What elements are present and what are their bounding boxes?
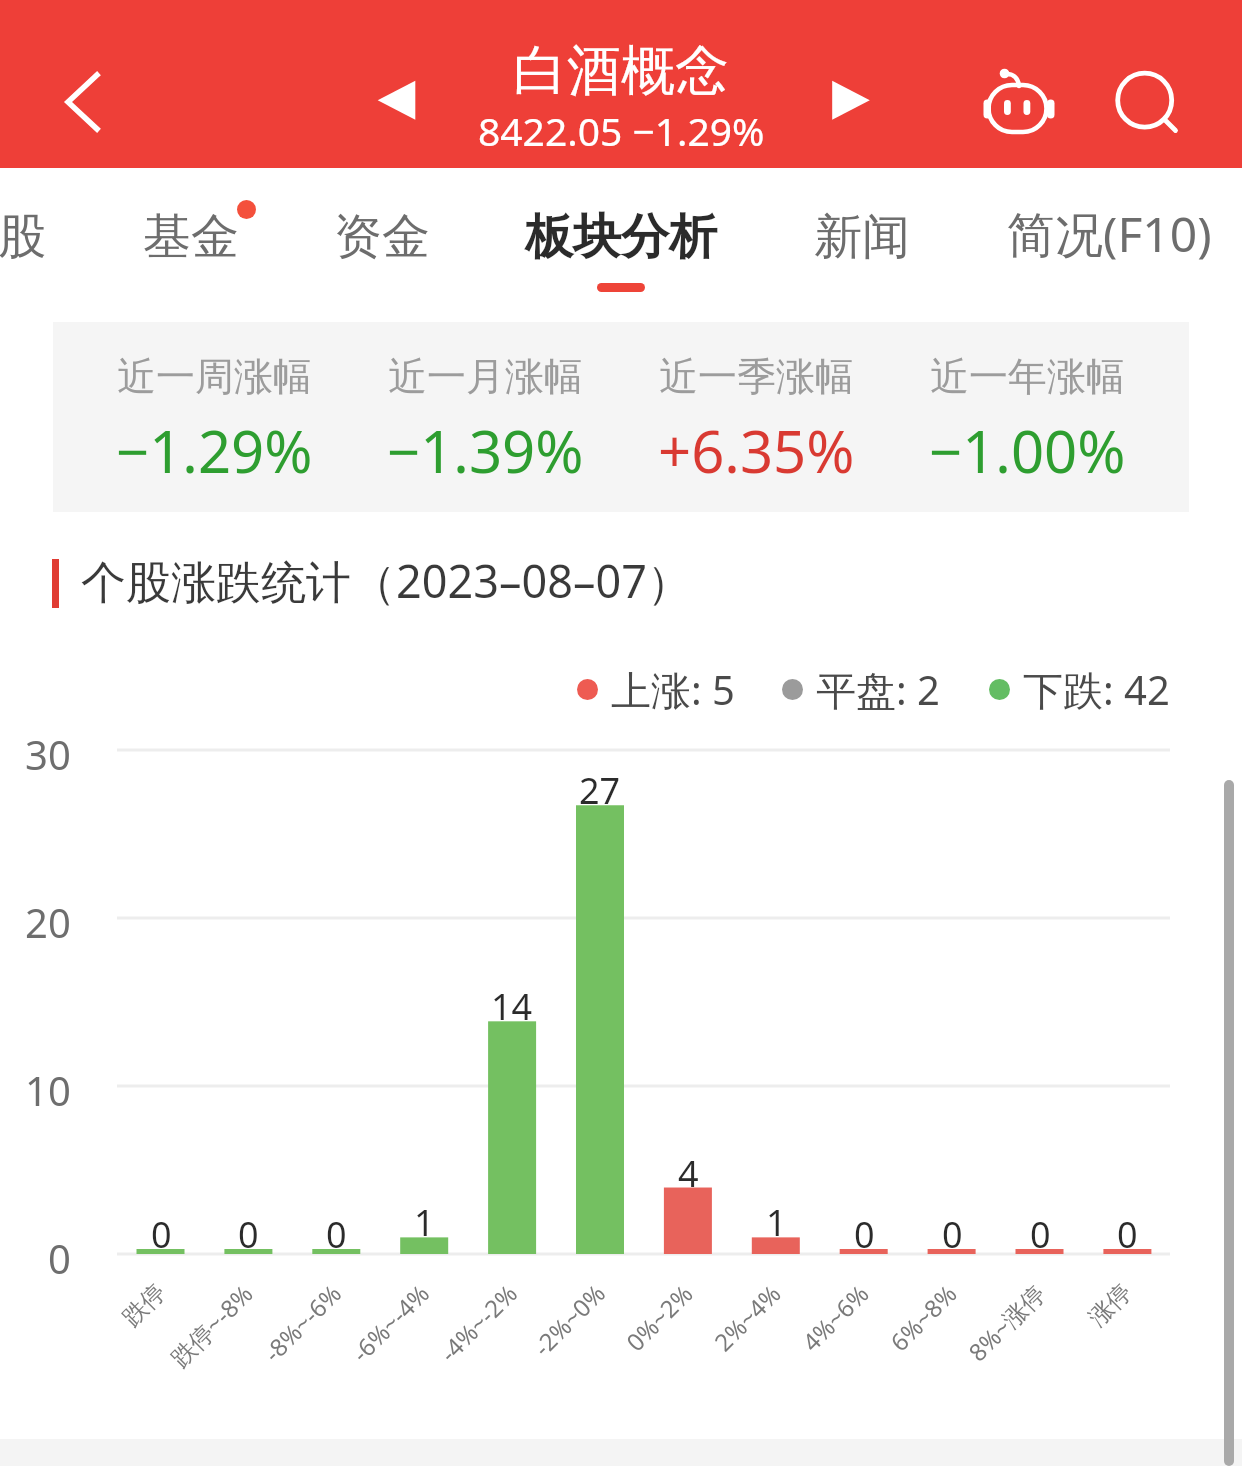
staticText: 0 xyxy=(942,1210,963,1259)
button[interactable]: 股 xyxy=(0,168,46,298)
staticText: 跌停~-8% xyxy=(163,1277,260,1374)
staticText: 白酒概念 xyxy=(513,37,729,105)
button[interactable]: 新闻 xyxy=(814,168,910,298)
staticText: 上涨: 5 xyxy=(611,662,735,717)
staticText: 0 xyxy=(854,1210,875,1259)
staticText: 6%~8% xyxy=(883,1277,964,1358)
staticText: 下跌: 42 xyxy=(1023,662,1170,717)
button[interactable]: Back xyxy=(28,42,138,152)
staticText: 近一年涨幅 xyxy=(930,352,1125,401)
staticText: 跌停 xyxy=(116,1277,172,1333)
staticText: −1.29% xyxy=(116,411,313,490)
button[interactable]: 板块分析 xyxy=(525,168,717,298)
staticText: 基金 xyxy=(143,207,239,267)
staticText: 8%~涨停 xyxy=(961,1277,1052,1368)
button[interactable]: Next sector xyxy=(797,50,897,150)
staticText: 10 xyxy=(25,1063,71,1117)
staticText: 近一季涨幅 xyxy=(659,352,854,401)
button[interactable]: 资金 xyxy=(334,168,430,298)
staticText: 资金 xyxy=(334,207,430,267)
staticText: 0 xyxy=(1117,1210,1138,1259)
button[interactable]: Search xyxy=(1088,43,1208,163)
button[interactable]: 平盘: 2 xyxy=(782,662,940,717)
staticText: -6%~-4% xyxy=(344,1277,436,1369)
staticText: 1 xyxy=(414,1198,435,1247)
staticText: 0 xyxy=(326,1210,347,1259)
button[interactable]: 近一周涨幅 xyxy=(79,322,350,512)
staticText: 0%~2% xyxy=(619,1277,700,1358)
staticText: 4%~6% xyxy=(795,1277,876,1358)
staticText: 股 xyxy=(0,207,46,267)
button[interactable]: AI assistant xyxy=(957,43,1077,163)
staticText: 1 xyxy=(766,1198,787,1247)
button[interactable]: 近一年涨幅 xyxy=(892,322,1163,512)
staticText: 个股涨跌统计（2023–08–07） xyxy=(81,550,692,611)
button[interactable]: Previous sector xyxy=(346,50,446,150)
staticText: 0 xyxy=(1030,1210,1051,1259)
staticText: 简况(F10) xyxy=(1007,201,1212,267)
staticText: 8422.05 −1.29% xyxy=(478,104,765,157)
staticText: 近一周涨幅 xyxy=(117,352,312,401)
staticText: 0 xyxy=(151,1210,172,1259)
staticText: −1.00% xyxy=(929,411,1126,490)
button[interactable]: 近一月涨幅 xyxy=(350,322,621,512)
staticText: 平盘: 2 xyxy=(816,662,940,717)
staticText: 4 xyxy=(678,1149,699,1198)
button[interactable]: 下跌: 42 xyxy=(989,662,1170,717)
staticText: 27 xyxy=(579,766,621,815)
button[interactable]: 上涨: 5 xyxy=(577,662,735,717)
staticText: -8%~-6% xyxy=(256,1277,348,1369)
staticText: +6.35% xyxy=(658,411,855,490)
staticText: 30 xyxy=(25,727,71,781)
button[interactable]: 简况(F10) xyxy=(1007,168,1212,298)
staticText: 涨停 xyxy=(1082,1277,1138,1333)
button[interactable]: 近一季涨幅 xyxy=(621,322,892,512)
staticText: −1.39% xyxy=(387,411,584,490)
staticText: 20 xyxy=(25,895,71,949)
staticText: 2%~4% xyxy=(707,1277,788,1358)
button[interactable]: 个股涨跌统计（2023–08–07） xyxy=(52,553,692,614)
staticText: -2%~0% xyxy=(526,1277,612,1363)
staticText: 14 xyxy=(491,982,533,1031)
button[interactable]: 基金 xyxy=(143,168,239,298)
button[interactable]: 白酒概念 xyxy=(311,36,931,106)
staticText: 新闻 xyxy=(814,207,910,267)
staticText: -4%~-2% xyxy=(432,1277,524,1369)
staticText: 板块分析 xyxy=(525,207,717,267)
staticText: 近一月涨幅 xyxy=(388,352,583,401)
staticText: 0 xyxy=(48,1231,71,1285)
staticText: 0 xyxy=(238,1210,259,1259)
